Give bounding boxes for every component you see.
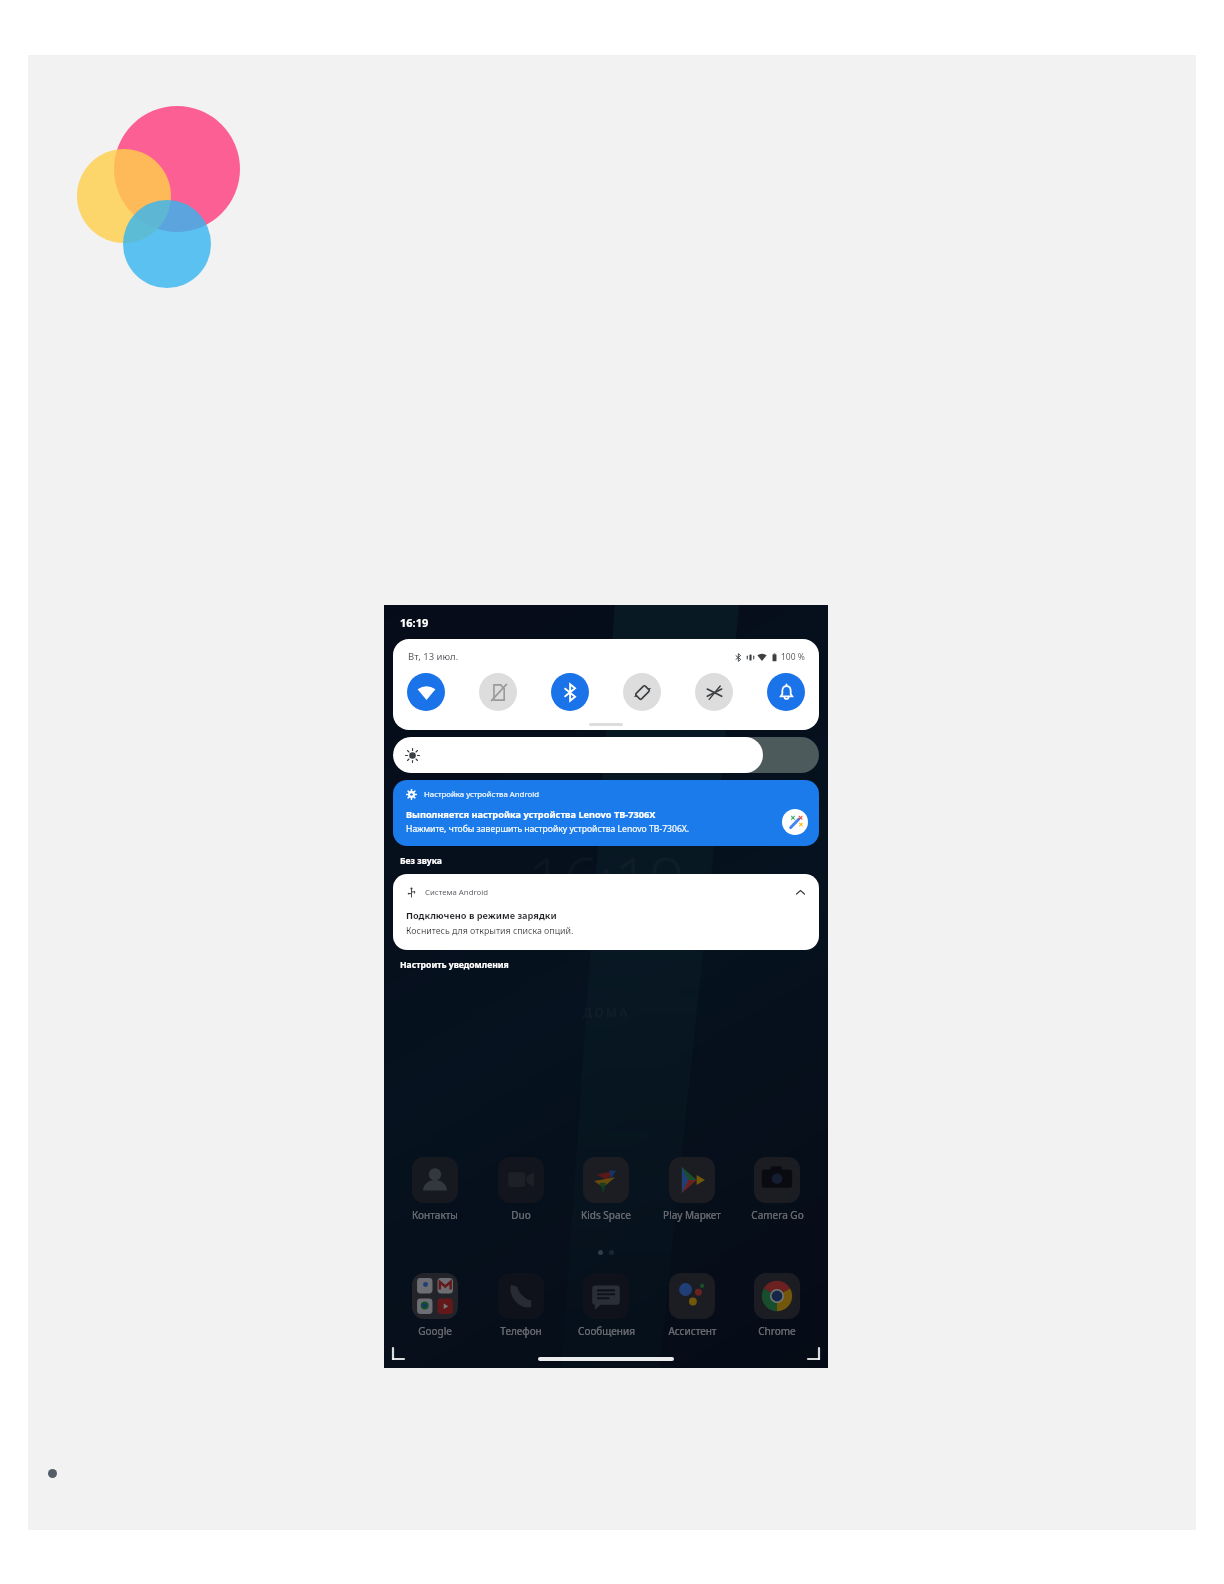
- staticText: Google: [418, 1324, 452, 1338]
- staticText: Телефон: [500, 1324, 542, 1338]
- staticText: Система Android: [425, 887, 489, 898]
- button[interactable]: Bluetooth: [551, 673, 589, 711]
- button[interactable]: Контакты: [398, 1157, 472, 1222]
- staticText: Без звука: [400, 855, 442, 867]
- button[interactable]: Camera Go: [740, 1157, 814, 1222]
- button[interactable]: Mobile data off: [479, 673, 517, 711]
- staticText: 100 %: [781, 651, 805, 663]
- button[interactable]: Google: [398, 1273, 472, 1338]
- button[interactable]: Collapse: [792, 884, 808, 900]
- button[interactable]: Do not disturb: [767, 673, 805, 711]
- staticText: Подключено в режиме зарядки: [406, 909, 557, 922]
- staticText: Play Маркет: [663, 1208, 721, 1222]
- staticText: Вт, 13 июл.: [408, 650, 459, 663]
- button[interactable]: Duo: [484, 1157, 558, 1222]
- staticText: 16:19: [400, 615, 429, 630]
- button[interactable]: Home: [538, 1357, 674, 1361]
- staticText: 16:19: [528, 837, 685, 921]
- staticText: Duo: [511, 1208, 531, 1222]
- staticText: Kids Space: [581, 1208, 631, 1222]
- staticText: Camera Go: [751, 1208, 804, 1222]
- button[interactable]: Ассистент: [655, 1273, 729, 1338]
- staticText: Коснитесь для открытия списка опций.: [406, 925, 574, 937]
- staticText: Сообщения: [578, 1324, 635, 1338]
- staticText: Chrome: [758, 1324, 796, 1338]
- staticText: Настройка устройства Android: [424, 789, 539, 800]
- button[interactable]: Настроить уведомления: [400, 959, 509, 971]
- staticText: Выполняется настройка устройства Lenovo …: [406, 808, 656, 821]
- button[interactable]: Wi-Fi: [407, 673, 445, 711]
- button[interactable]: Телефон: [484, 1273, 558, 1338]
- staticText: Ассистент: [668, 1324, 717, 1338]
- button[interactable]: Brightness: [393, 737, 819, 773]
- staticText: ВТ, 13 ИЮЛ.: [562, 923, 651, 938]
- button[interactable]: Сообщения: [569, 1273, 643, 1338]
- button[interactable]: Play Маркет: [655, 1157, 729, 1222]
- button[interactable]: Data saver: [695, 673, 733, 711]
- staticText: Контакты: [412, 1208, 458, 1222]
- button[interactable]: Настройка устройства Android: [393, 780, 819, 846]
- button[interactable]: Auto-rotate: [623, 673, 661, 711]
- button[interactable]: Система Android: [393, 874, 819, 950]
- staticText: Нажмите, чтобы завершить настройку устро…: [406, 823, 690, 835]
- button[interactable]: Chrome: [740, 1273, 814, 1338]
- button[interactable]: Kids Space: [569, 1157, 643, 1222]
